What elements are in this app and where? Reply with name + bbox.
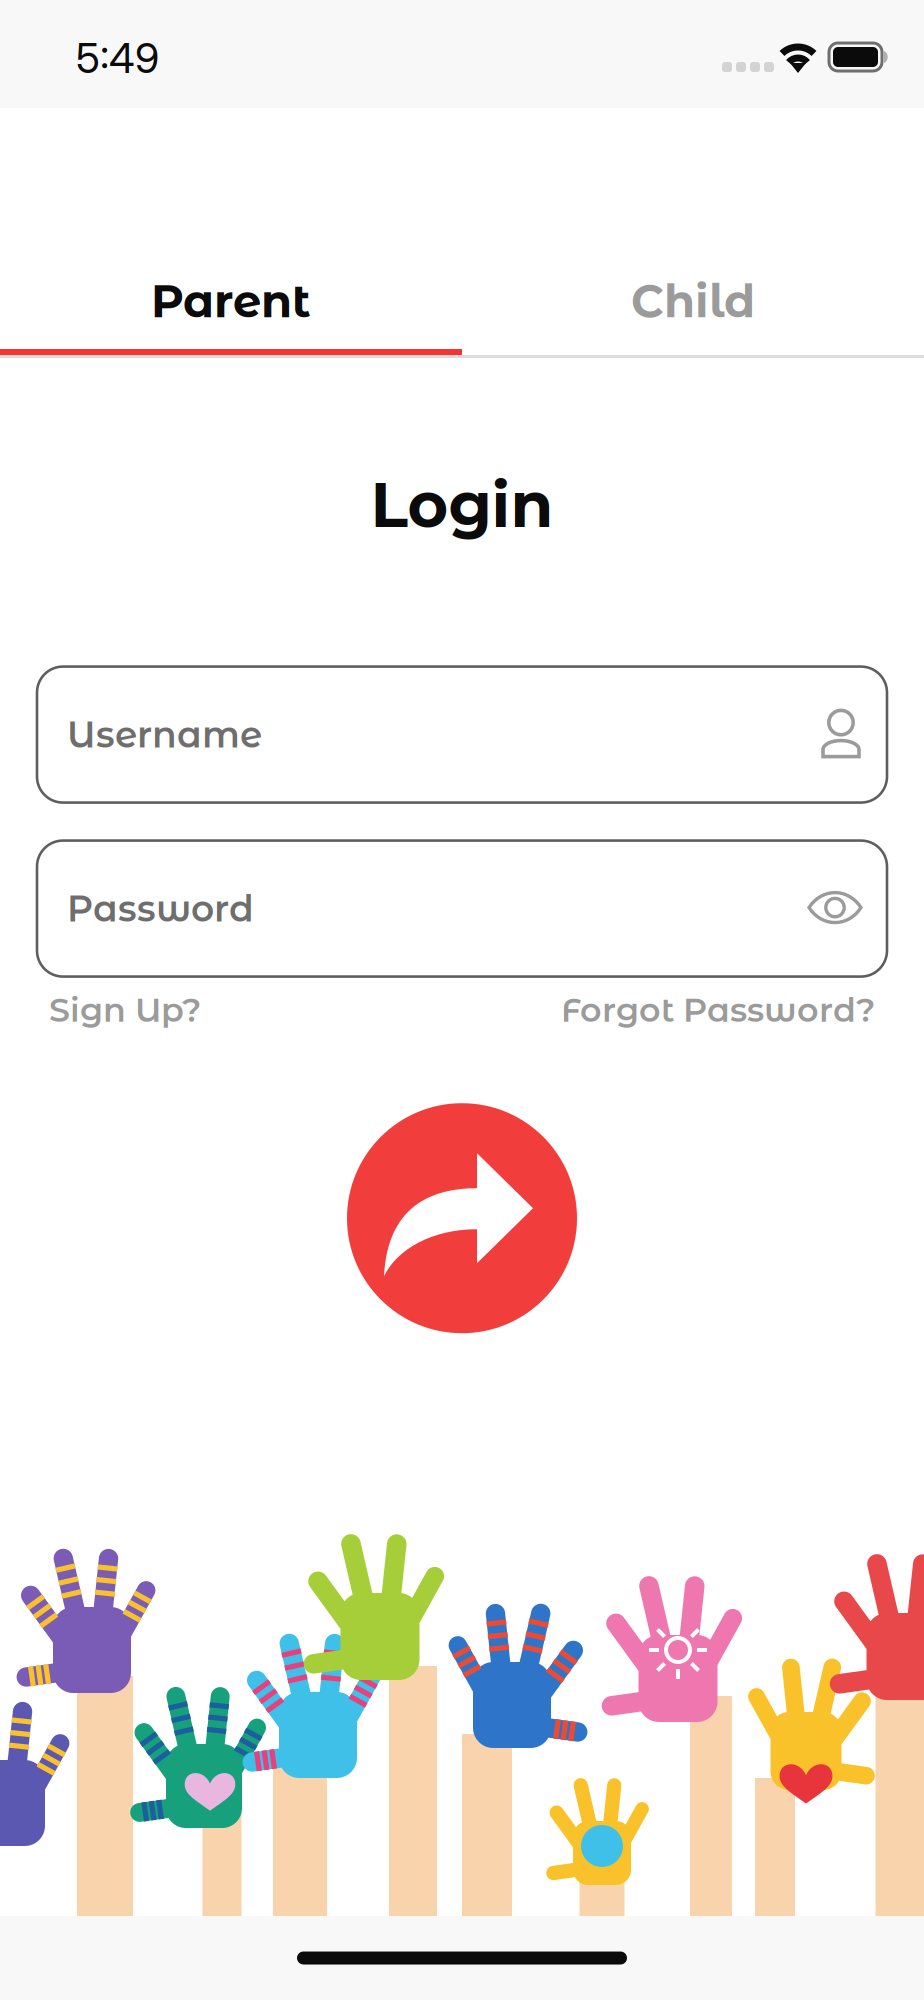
staticText: Child bbox=[631, 273, 755, 328]
staticText: Forgot Password? bbox=[561, 990, 875, 1030]
staticText: Sign Up? bbox=[49, 990, 201, 1030]
staticText: Password bbox=[67, 887, 254, 930]
staticText: Parent bbox=[151, 273, 311, 328]
button[interactable]: Log in bbox=[347, 1103, 577, 1333]
button[interactable]: Child bbox=[462, 265, 924, 337]
button[interactable]: Sign Up? bbox=[49, 990, 201, 1030]
staticText: Username bbox=[67, 713, 262, 756]
staticText: Login bbox=[370, 467, 553, 543]
button[interactable]: Parent bbox=[0, 265, 462, 337]
staticText: 5:49 bbox=[76, 33, 159, 83]
button[interactable]: Forgot Password? bbox=[561, 990, 875, 1030]
